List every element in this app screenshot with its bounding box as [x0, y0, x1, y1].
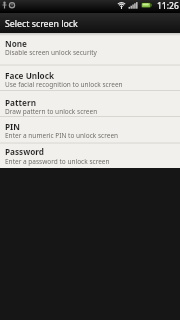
button[interactable]: Pattern: [0, 91, 180, 117]
staticText: Pattern: [5, 97, 36, 108]
staticText: PIN: [5, 121, 20, 132]
staticText: Draw pattern to unlock screen: [5, 107, 98, 116]
staticText: Enter a password to unlock screen: [5, 157, 110, 166]
button[interactable]: Password: [0, 144, 180, 168]
staticText: Select screen lock: [5, 18, 78, 30]
button[interactable]: PIN: [0, 117, 180, 144]
staticText: Use facial recognition to unlock screen: [5, 80, 123, 89]
staticText: Disable screen unlock security: [5, 48, 97, 57]
staticText: Enter a numeric PIN to unlock screen: [5, 131, 119, 140]
button[interactable]: None: [0, 33, 180, 65]
staticText: 11:26: [157, 0, 179, 12]
staticText: Password: [5, 146, 45, 157]
button[interactable]: Face Unlock: [0, 65, 180, 91]
staticText: Face Unlock: [5, 70, 55, 81]
staticText: None: [5, 38, 27, 49]
